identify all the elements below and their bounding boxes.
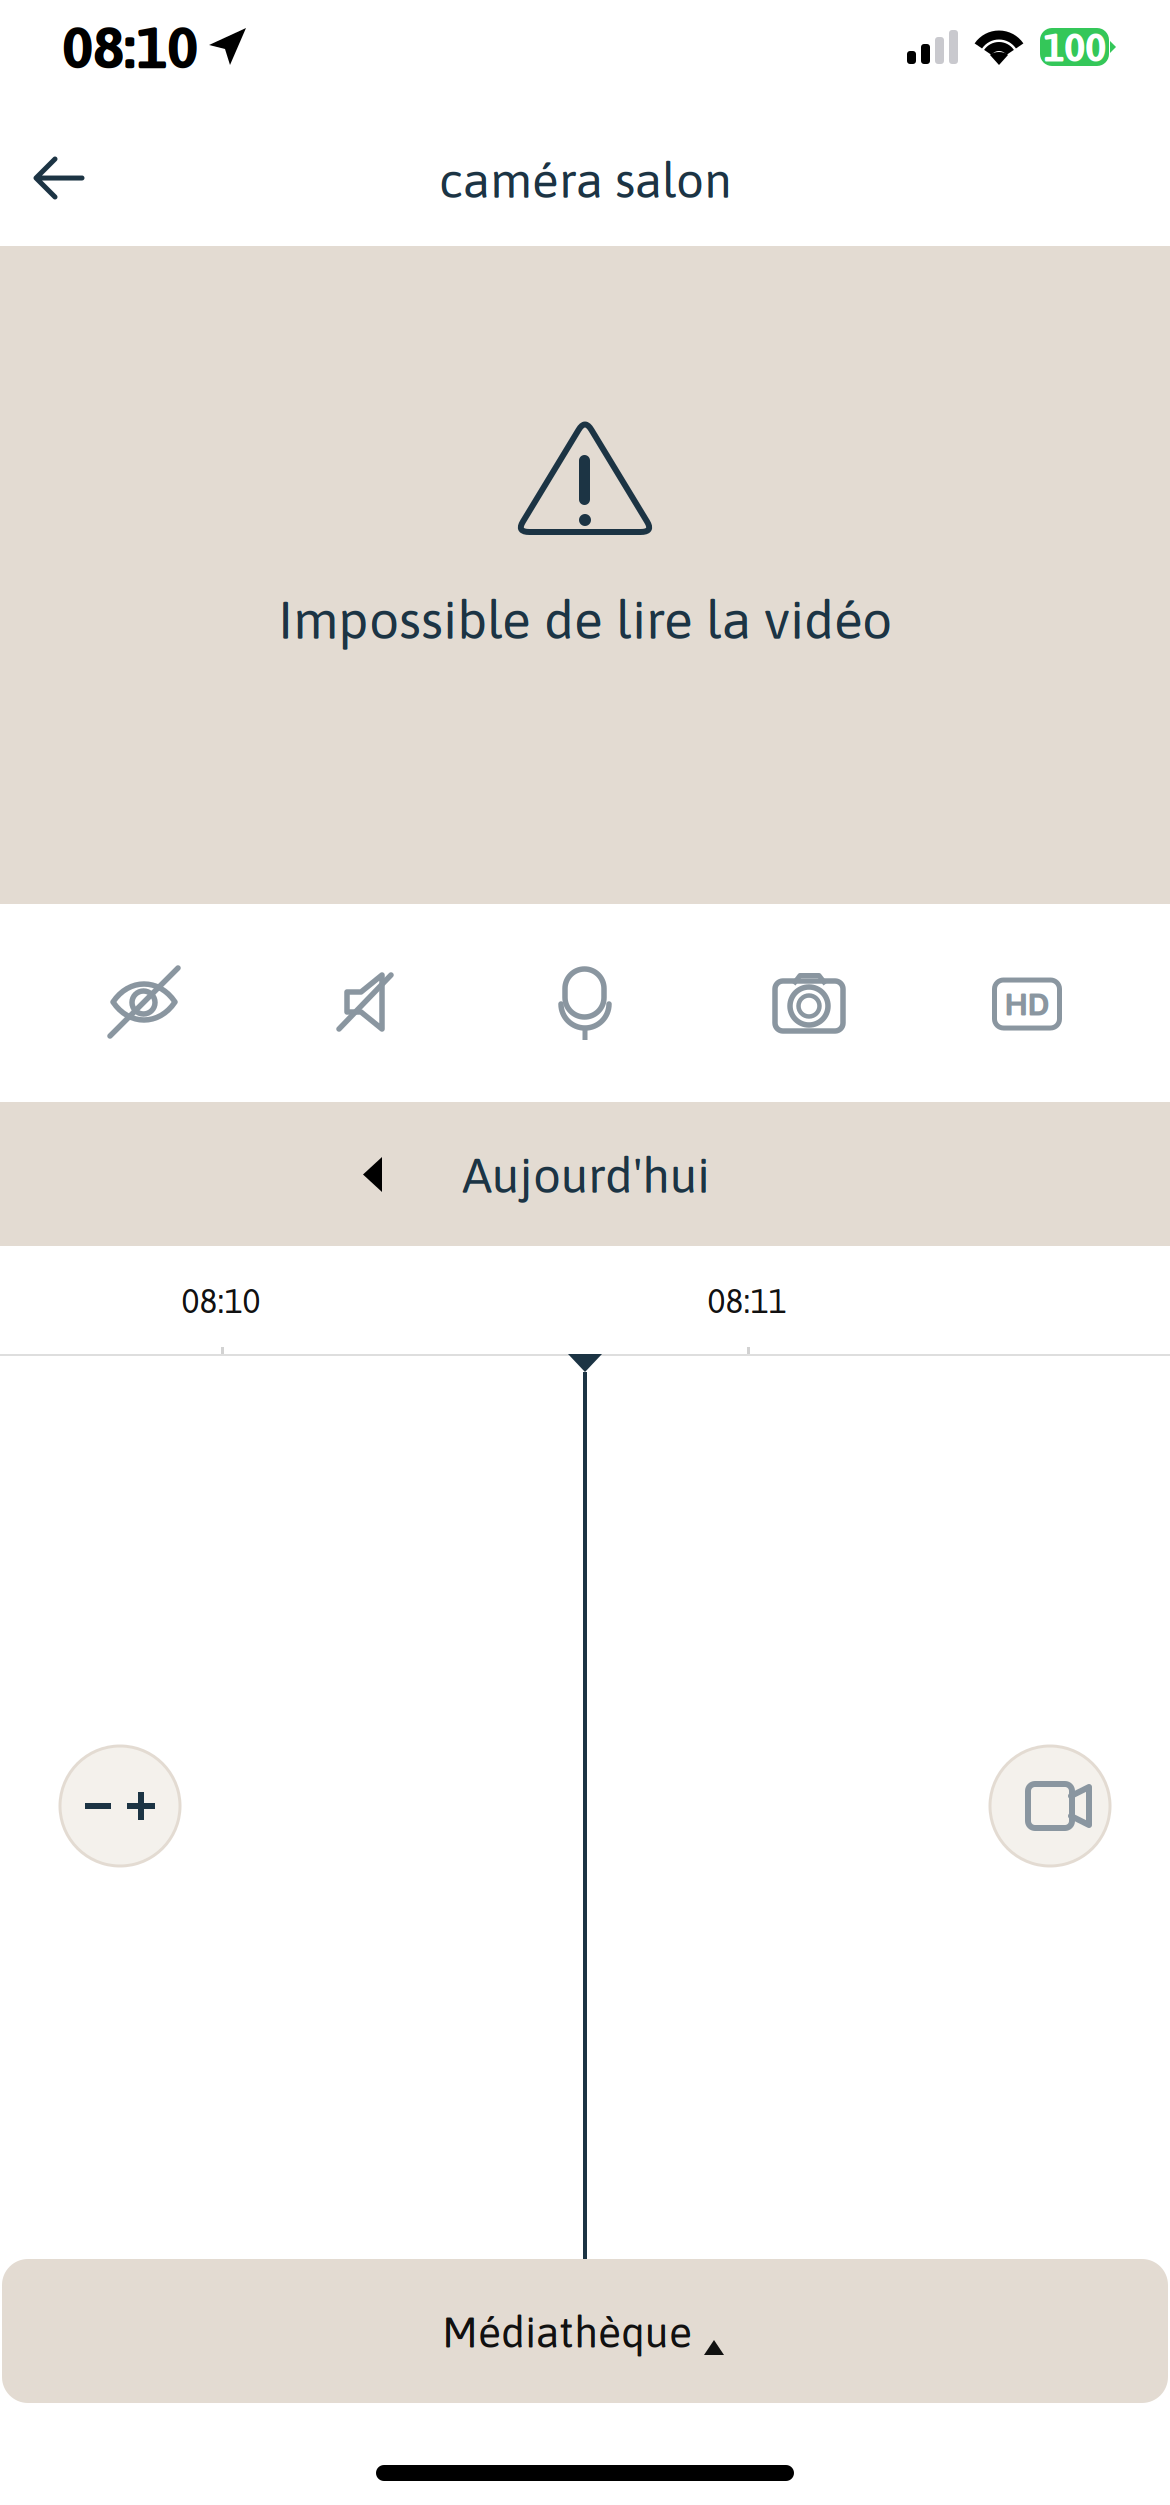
button[interactable]: Hide video xyxy=(89,947,199,1057)
staticText: caméra salon xyxy=(439,152,731,208)
button[interactable]: Mute xyxy=(310,947,420,1057)
staticText: Médiathèque xyxy=(442,2308,692,2356)
staticText: 08:10 xyxy=(181,1282,260,1320)
button[interactable]: Aujourd'hui xyxy=(0,1102,1170,1246)
button[interactable]: Zoom xyxy=(55,1741,185,1871)
staticText: 08:11 xyxy=(707,1282,786,1320)
staticText: 100 xyxy=(1043,24,1106,70)
button[interactable]: Video quality HD xyxy=(972,949,1082,1059)
button[interactable]: Take photo xyxy=(754,943,864,1053)
staticText: 08:10 xyxy=(62,13,198,81)
staticText: Aujourd'hui xyxy=(462,1147,710,1203)
button[interactable]: Médiathèque xyxy=(0,2259,1170,2403)
button[interactable]: Microphone xyxy=(530,938,640,1048)
button[interactable]: Back xyxy=(5,124,113,232)
button[interactable]: Record video xyxy=(985,1741,1115,1871)
staticText: Impossible de lire la vidéo xyxy=(278,589,892,650)
staticText: HD xyxy=(1004,986,1049,1022)
